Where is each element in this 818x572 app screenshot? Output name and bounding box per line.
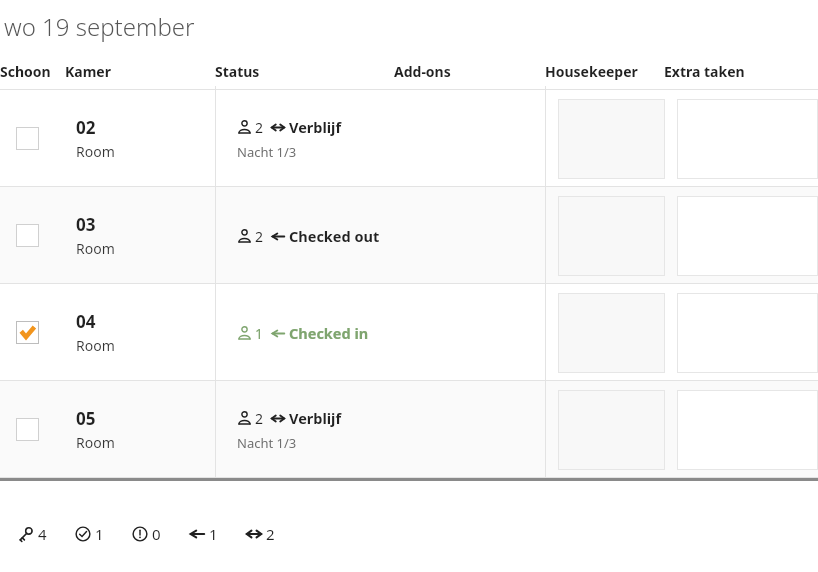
staticText: Checked out xyxy=(289,226,380,246)
staticText: Housekeeper xyxy=(545,62,638,81)
button[interactable]: Extra taken toevoegen xyxy=(677,196,818,276)
staticText: 2 xyxy=(255,118,264,137)
button[interactable]: Schoon aanvinken xyxy=(16,418,39,441)
staticText: Status xyxy=(215,62,260,81)
staticText: Nacht 1/3 xyxy=(237,434,297,452)
button[interactable]: Schoon aangevinkt xyxy=(0,284,818,381)
button[interactable]: Sleutels: 4 xyxy=(18,524,47,544)
button[interactable]: Extra taken toevoegen xyxy=(677,293,818,373)
staticText: 2 xyxy=(255,227,264,246)
button[interactable]: Housekeeper selecteren xyxy=(558,99,665,179)
staticText: 04 xyxy=(76,310,96,333)
staticText: 2 xyxy=(266,524,275,544)
button[interactable]: Verblijf: 2 xyxy=(246,524,275,544)
button[interactable]: Schoon aangevinkt xyxy=(16,321,39,344)
button[interactable]: Schoon aanvinken xyxy=(16,224,39,247)
button[interactable]: Extra taken toevoegen xyxy=(677,390,818,470)
staticText: Kamer xyxy=(65,62,111,81)
button[interactable]: Schoon aanvinken xyxy=(0,381,818,478)
staticText: 03 xyxy=(76,213,96,236)
staticText: Room xyxy=(76,336,115,355)
staticText: wo 19 september xyxy=(4,10,195,43)
staticText: 02 xyxy=(76,116,96,139)
button[interactable]: Aandacht: 0 xyxy=(132,524,161,544)
button[interactable]: Housekeeper selecteren xyxy=(558,293,665,373)
staticText: Room xyxy=(76,433,115,452)
button[interactable]: Housekeeper selecteren xyxy=(558,196,665,276)
staticText: Verblijf xyxy=(289,117,342,137)
staticText: Nacht 1/3 xyxy=(237,143,297,161)
button[interactable]: Check-outs: 1 xyxy=(189,524,218,544)
staticText: 2 xyxy=(255,409,264,428)
button[interactable]: Schoon aanvinken xyxy=(0,90,818,187)
staticText: 4 xyxy=(38,524,47,544)
staticText: 0 xyxy=(152,524,161,544)
staticText: 1 xyxy=(209,524,218,544)
staticText: Extra taken xyxy=(664,62,745,81)
button[interactable]: Gereed: 1 xyxy=(75,524,104,544)
staticText: Add-ons xyxy=(394,62,451,81)
button[interactable]: Schoon aanvinken xyxy=(0,187,818,284)
staticText: 05 xyxy=(76,407,96,430)
staticText: 1 xyxy=(255,324,264,343)
button[interactable]: Schoon aanvinken xyxy=(16,127,39,150)
button[interactable]: Housekeeper selecteren xyxy=(558,390,665,470)
button[interactable]: Extra taken toevoegen xyxy=(677,99,818,179)
staticText: Schoon xyxy=(0,62,51,81)
staticText: 1 xyxy=(95,524,104,544)
staticText: Verblijf xyxy=(289,408,342,428)
staticText: Room xyxy=(76,239,115,258)
staticText: Checked in xyxy=(289,323,369,343)
staticText: Room xyxy=(76,142,115,161)
